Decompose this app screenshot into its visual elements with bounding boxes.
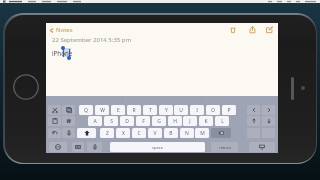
button[interactable]: Up: [247, 116, 260, 126]
staticText: C: [137, 130, 141, 137]
staticText: Notes: [56, 26, 73, 34]
staticText: Q: [84, 107, 88, 114]
button[interactable]: U: [174, 105, 188, 115]
button[interactable]: Copy: [62, 105, 75, 115]
staticText: T: [149, 107, 152, 114]
staticText: return: [219, 145, 231, 150]
button[interactable]: E: [111, 105, 125, 115]
button[interactable]: C: [132, 128, 146, 138]
staticText: U: [179, 107, 183, 114]
button[interactable]: Symbols: [62, 116, 75, 126]
button[interactable]: Down: [262, 116, 275, 126]
button[interactable]: I: [190, 105, 204, 115]
button[interactable]: J: [183, 116, 197, 126]
staticText: N: [185, 130, 189, 137]
button[interactable]: Y: [159, 105, 173, 115]
button[interactable]: W: [95, 105, 109, 115]
staticText: Y: [165, 107, 168, 114]
button[interactable]: K: [199, 116, 213, 126]
staticText: iPhone: [52, 49, 73, 57]
button[interactable]: Shift: [77, 128, 96, 138]
button[interactable]: V: [148, 128, 162, 138]
staticText: J: [189, 118, 191, 125]
button[interactable]: D: [120, 116, 134, 126]
button[interactable]: Emoji: [49, 142, 67, 152]
button[interactable]: Numbers: [72, 142, 84, 152]
staticText: M: [200, 130, 205, 137]
button[interactable]: L: [215, 116, 229, 126]
button[interactable]: Left: [247, 105, 260, 115]
button[interactable]: space: [110, 142, 205, 152]
staticText: F: [142, 118, 145, 125]
staticText: Z: [106, 130, 109, 137]
staticText: E: [117, 107, 120, 114]
staticText: H: [173, 118, 177, 125]
button[interactable]: F: [136, 116, 150, 126]
staticText: P: [227, 107, 231, 114]
staticText: A: [93, 118, 97, 125]
button[interactable]: Q: [79, 105, 93, 115]
button[interactable]: P: [222, 105, 236, 115]
staticText: W: [100, 107, 105, 114]
button[interactable]: A: [88, 116, 102, 126]
button[interactable]: Z: [100, 128, 114, 138]
button[interactable]: Hide keyboard: [249, 142, 275, 152]
button[interactable]: T: [143, 105, 157, 115]
button[interactable]: Share: [245, 23, 259, 36]
staticText: L: [221, 118, 224, 125]
button[interactable]: G: [152, 116, 166, 126]
staticText: R: [132, 107, 136, 114]
staticText: G: [157, 118, 161, 125]
button[interactable]: Dictate: [62, 128, 75, 138]
staticText: S: [110, 118, 113, 125]
button[interactable]: N: [180, 128, 194, 138]
button[interactable]: H: [168, 116, 182, 126]
staticText: 22 September 2014 5:35 pm: [52, 36, 132, 44]
button[interactable]: return: [211, 142, 238, 152]
button[interactable]: Compose: [262, 23, 276, 36]
button[interactable]: Dictate: [87, 142, 102, 152]
button[interactable]: Notes: [46, 24, 77, 36]
button[interactable]: Delete: [226, 23, 240, 36]
staticText: O: [211, 107, 215, 114]
button[interactable]: Right: [262, 105, 275, 115]
button[interactable]: O: [206, 105, 220, 115]
button[interactable]: Backspace: [211, 128, 231, 138]
staticText: D: [125, 118, 129, 125]
button[interactable]: M: [195, 128, 209, 138]
staticText: X: [122, 130, 125, 137]
staticText: K: [204, 118, 208, 125]
button[interactable]: S: [104, 116, 118, 126]
staticText: space: [152, 145, 163, 150]
staticText: B: [169, 130, 173, 137]
button[interactable]: B: [164, 128, 178, 138]
staticText: V: [153, 130, 157, 137]
button[interactable]: Undo: [48, 128, 61, 138]
staticText: I: [196, 107, 198, 114]
button[interactable]: Paste: [48, 116, 61, 126]
button[interactable]: X: [116, 128, 130, 138]
button[interactable]: R: [127, 105, 141, 115]
button[interactable]: Cut: [48, 105, 61, 115]
